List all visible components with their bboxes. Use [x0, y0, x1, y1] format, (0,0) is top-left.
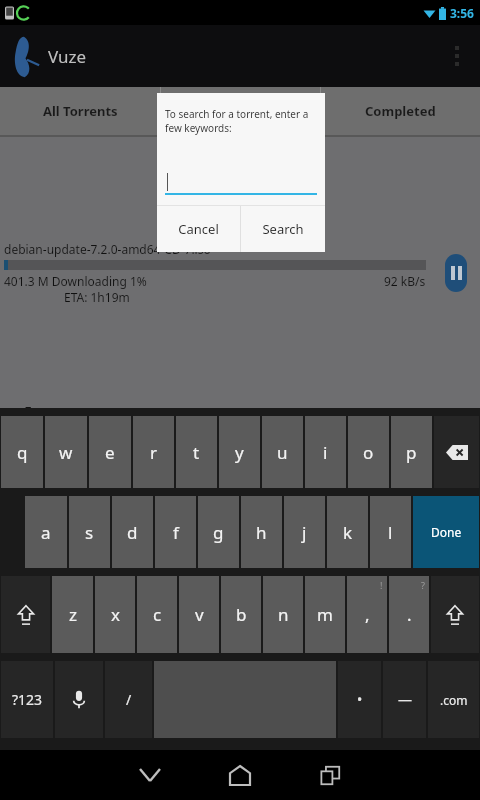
staticText: ?123 [12, 690, 43, 709]
staticText: m [317, 603, 333, 626]
button[interactable]: More options [434, 25, 480, 87]
button[interactable]: Completed [321, 87, 480, 135]
button[interactable]: g [198, 496, 239, 568]
button[interactable]: o [348, 416, 389, 488]
button[interactable]: n [263, 576, 303, 653]
staticText: u [277, 441, 288, 464]
button[interactable] [161, 87, 320, 135]
staticText: l [388, 521, 393, 544]
button[interactable]: • [338, 661, 381, 738]
button[interactable]: w [45, 416, 87, 488]
staticText: . [407, 603, 412, 626]
staticText: ? [421, 579, 425, 591]
staticText: ! [380, 579, 383, 591]
button[interactable]: u [262, 416, 303, 488]
staticText: s [85, 521, 94, 544]
staticText: x [111, 603, 120, 626]
button[interactable]: Recent apps [295, 750, 365, 800]
button[interactable]: . [389, 576, 429, 653]
staticText: q [17, 441, 28, 464]
button[interactable]: debian-update-7.2.0-amd64-CD-7.iso [0, 137, 480, 408]
staticText: / [126, 690, 132, 709]
button[interactable]: Pause [432, 137, 480, 408]
staticText: g [213, 521, 224, 544]
staticText: i [323, 441, 328, 464]
button[interactable]: Done [413, 496, 479, 568]
staticText: 3:56 [450, 5, 474, 21]
staticText: k [343, 521, 353, 544]
button[interactable]: a [25, 496, 67, 568]
button[interactable]: c [137, 576, 177, 653]
staticText: All Torrents [43, 102, 118, 120]
staticText: r [150, 441, 158, 464]
button[interactable]: Voice input [55, 661, 103, 738]
button[interactable]: q [1, 416, 43, 488]
button[interactable]: / [105, 661, 152, 738]
button[interactable]: Shift [431, 576, 479, 653]
staticText: c [153, 603, 162, 626]
staticText: Cancel [178, 220, 219, 238]
staticText: j [302, 521, 307, 544]
staticText: t [193, 441, 200, 464]
button[interactable]: l [370, 496, 411, 568]
staticText: Search [262, 220, 304, 238]
staticText: z [69, 603, 77, 626]
button[interactable]: Home [205, 750, 275, 800]
button[interactable]: m [305, 576, 345, 653]
button[interactable]: v [179, 576, 219, 653]
staticText: • [357, 690, 363, 709]
button[interactable]: , [347, 576, 387, 653]
button[interactable]: Backspace [434, 416, 479, 488]
button[interactable]: b [221, 576, 261, 653]
staticText: ETA: 1h19m [64, 289, 130, 305]
staticText: To search for a torrent, enter a few key… [165, 107, 317, 135]
staticText: p [406, 441, 417, 464]
button[interactable]: p [391, 416, 432, 488]
button[interactable]: Cancel [157, 206, 240, 252]
button[interactable]: t [176, 416, 217, 488]
staticText: — [398, 690, 412, 709]
button[interactable]: Search [241, 206, 325, 252]
staticText: y [235, 441, 244, 464]
button[interactable]: k [327, 496, 368, 568]
button[interactable]: f [155, 496, 196, 568]
staticText: , [365, 603, 370, 626]
button[interactable]: h [241, 496, 282, 568]
staticText: h [256, 521, 267, 544]
staticText: d [127, 521, 138, 544]
staticText: Completed [365, 102, 436, 120]
staticText: f [173, 521, 179, 544]
staticText: .com [440, 692, 468, 708]
button[interactable]: y [219, 416, 260, 488]
button[interactable]: Back [115, 750, 185, 800]
staticText: a [41, 521, 51, 544]
button[interactable]: r [133, 416, 174, 488]
button[interactable]: d [112, 496, 153, 568]
staticText: Vuze [48, 45, 87, 68]
button[interactable]: i [305, 416, 346, 488]
button[interactable]: z [52, 576, 93, 653]
button[interactable]: All Torrents [0, 87, 160, 135]
staticText: 92 kB/s [384, 273, 426, 289]
button[interactable]: x [95, 576, 135, 653]
button[interactable]: s [69, 496, 110, 568]
staticText: v [195, 603, 204, 626]
staticText: w [59, 441, 73, 464]
button[interactable]: Shift [1, 576, 50, 653]
button[interactable]: j [284, 496, 325, 568]
staticText: o [363, 441, 374, 464]
button[interactable]: — [383, 661, 426, 738]
button[interactable]: e [89, 416, 131, 488]
staticText: e [105, 441, 115, 464]
staticText: b [236, 603, 247, 626]
button[interactable]: .com [428, 661, 479, 738]
staticText: Done [431, 524, 462, 540]
button[interactable]: ?123 [1, 661, 53, 738]
staticText: n [278, 603, 289, 626]
staticText: debian-update-7.2.0-amd64-CD-7.iso [4, 241, 211, 257]
staticText: 401.3 M Downloading 1% [4, 273, 147, 289]
